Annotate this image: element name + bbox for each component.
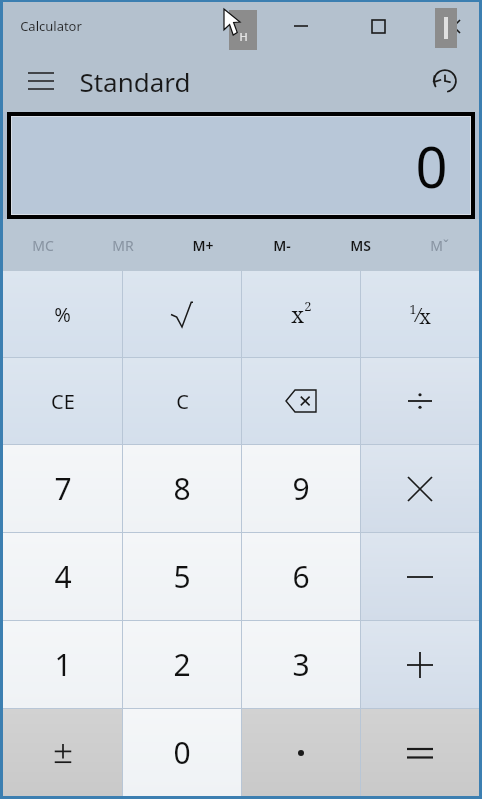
staticText: C (176, 388, 189, 415)
staticText: MS (350, 236, 371, 255)
button[interactable]: Mˇ (400, 219, 479, 271)
button[interactable] (361, 445, 479, 532)
button[interactable] (242, 358, 360, 444)
button[interactable]: 8 (123, 445, 241, 532)
staticText: 8 (173, 468, 191, 509)
button[interactable] (361, 358, 479, 444)
staticText: 0 (173, 732, 191, 773)
staticText: 4 (54, 556, 72, 597)
staticText: 2 (173, 644, 191, 685)
staticText: CE (51, 388, 75, 415)
button[interactable]: 2 (123, 621, 241, 708)
staticText: H (239, 29, 248, 44)
button[interactable]: 3 (242, 621, 360, 708)
staticText: Mˇ (430, 236, 449, 255)
staticText: ⁄ (417, 301, 419, 328)
button[interactable]: History (421, 57, 469, 105)
button[interactable]: M+ (163, 219, 242, 271)
button[interactable]: 1 (3, 621, 122, 708)
button[interactable]: 5 (123, 533, 241, 620)
staticText: M+ (192, 236, 214, 255)
button[interactable]: M- (242, 219, 321, 271)
button[interactable]: 6 (242, 533, 360, 620)
button[interactable]: MR (83, 219, 163, 271)
staticText: 1 (54, 644, 72, 685)
staticText: Standard (79, 64, 191, 99)
button[interactable]: MC (3, 219, 83, 271)
button[interactable]: 0 (123, 709, 241, 796)
button[interactable] (3, 709, 122, 796)
staticText: 1 (409, 300, 417, 318)
button[interactable] (242, 709, 360, 796)
staticText: 6 (292, 556, 310, 597)
button[interactable] (361, 533, 479, 620)
staticText: 5 (173, 556, 191, 597)
button[interactable]: CE (3, 358, 122, 444)
staticText: M- (273, 236, 291, 255)
button[interactable]: MS (321, 219, 400, 271)
staticText: % (54, 301, 71, 328)
button[interactable]: Maximize (355, 6, 401, 46)
button[interactable]: Close (430, 6, 476, 46)
staticText: 9 (292, 468, 310, 509)
staticText: Calculator (20, 17, 82, 35)
button[interactable]: % (3, 271, 122, 357)
button[interactable]: Menu (19, 59, 63, 103)
button[interactable]: x (242, 271, 360, 357)
staticText: 7 (54, 468, 72, 509)
staticText: x (291, 299, 304, 329)
button[interactable] (123, 271, 241, 357)
staticText: 2 (304, 297, 312, 315)
button[interactable]: C (123, 358, 241, 444)
button[interactable]: 1 (361, 271, 479, 357)
staticText: MC (32, 236, 54, 255)
staticText: 0 (415, 128, 448, 204)
button[interactable]: 7 (3, 445, 122, 532)
button[interactable]: 4 (3, 533, 122, 620)
button[interactable]: 9 (242, 445, 360, 532)
staticText: 3 (292, 644, 310, 685)
button[interactable] (361, 621, 479, 708)
staticText: x (419, 303, 431, 330)
staticText: MR (112, 236, 134, 255)
button[interactable] (361, 709, 479, 796)
button[interactable]: Minimize (278, 6, 324, 46)
